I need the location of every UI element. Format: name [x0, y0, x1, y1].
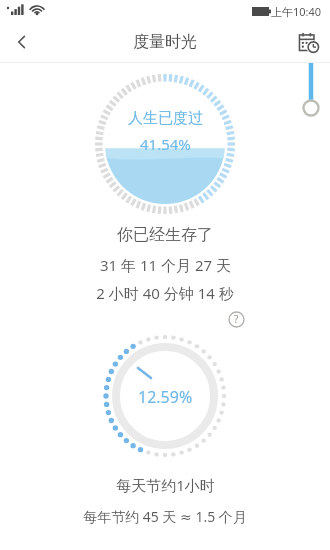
button[interactable]: Calendar [286, 22, 330, 62]
staticText: 度量时光 [133, 32, 197, 52]
staticText: 每年节约 45 天 ≈ 1.5 个月 [83, 507, 247, 526]
staticText: 31 年 11 个月 27 天 [100, 255, 231, 275]
staticText: 12.59% [138, 386, 193, 408]
staticText: 人生已度过 [128, 109, 203, 128]
staticText: 上午10:40 [271, 4, 322, 19]
button[interactable]: Help [224, 307, 248, 331]
staticText: 41.54% [140, 134, 191, 154]
staticText: 每天节约1小时 [116, 475, 215, 495]
staticText: ? [234, 312, 239, 326]
staticText: 你已经生存了 [117, 225, 213, 245]
button[interactable]: Back [0, 22, 44, 62]
staticText: 2 小时 40 分钟 14 秒 [96, 283, 234, 303]
